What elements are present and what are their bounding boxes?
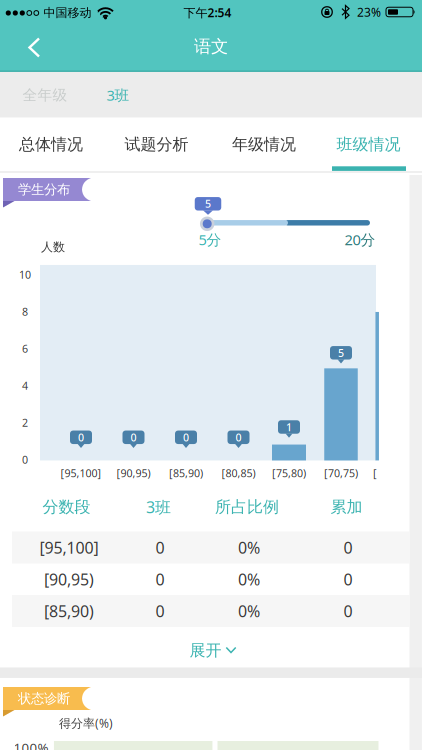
staticText: 累加: [330, 497, 362, 517]
staticText: 中国移动: [43, 5, 91, 20]
staticText: 所占比例: [215, 497, 279, 517]
staticText: 10: [19, 267, 31, 282]
staticText: 6: [22, 341, 28, 356]
button[interactable]: 总体情况: [3, 117, 99, 171]
staticText: [85,90): [169, 466, 203, 480]
staticText: [75,80): [272, 466, 306, 480]
staticText: 23%: [357, 4, 381, 20]
staticText: 3班: [106, 85, 129, 105]
staticText: 4: [22, 378, 28, 393]
staticText: 8: [22, 304, 28, 319]
staticText: 0: [155, 537, 164, 558]
button[interactable]: [12, 25, 56, 69]
button[interactable]: [90,95): [0, 563, 422, 595]
staticText: 5分: [198, 230, 221, 249]
staticText: 0: [183, 430, 189, 444]
staticText: [70,75): [324, 466, 358, 480]
button[interactable]: 全年级: [13, 72, 77, 117]
staticText: 3班: [146, 496, 171, 518]
staticText: 1: [286, 420, 292, 434]
staticText: 0: [343, 537, 352, 558]
staticText: 0: [78, 430, 84, 444]
staticText: 下午2:54: [183, 4, 231, 20]
staticText: 班级情况: [336, 135, 400, 154]
staticText: 0: [155, 600, 164, 622]
staticText: 试题分析: [124, 135, 188, 154]
staticText: 0: [235, 430, 241, 444]
staticText: 总体情况: [19, 135, 83, 154]
button[interactable]: [95,100]: [0, 531, 422, 563]
button[interactable]: 班级情况: [320, 117, 416, 171]
staticText: 0: [343, 600, 352, 622]
staticText: 5: [338, 346, 344, 360]
staticText: 年级情况: [232, 135, 296, 154]
staticText: 5: [205, 196, 211, 211]
staticText: 2: [22, 415, 28, 430]
staticText: 得分率(%): [59, 715, 113, 731]
button[interactable]: 年级情况: [216, 117, 312, 171]
staticText: 分数段: [42, 497, 90, 517]
staticText: [90,95): [116, 466, 150, 480]
staticText: 0: [22, 452, 28, 467]
staticText: [95,100]: [39, 537, 98, 558]
staticText: [95,100]: [60, 466, 101, 480]
staticText: [80,85): [221, 466, 255, 480]
button[interactable]: 试题分析: [108, 117, 204, 171]
staticText: 0%: [238, 537, 260, 558]
staticText: 人数: [41, 240, 65, 254]
staticText: 学生分布: [18, 181, 70, 198]
staticText: 100%: [13, 739, 48, 750]
staticText: 展开: [189, 641, 221, 660]
staticText: 全年级: [22, 86, 67, 104]
button[interactable]: 3班: [93, 72, 143, 117]
staticText: 语文: [194, 36, 228, 57]
staticText: 0%: [238, 600, 260, 622]
staticText: 0: [343, 569, 352, 590]
staticText: 20分: [344, 230, 375, 249]
staticText: [85,90): [44, 600, 94, 622]
staticText: 0: [155, 569, 164, 590]
staticText: 0: [130, 430, 136, 444]
button[interactable]: 展开: [168, 635, 258, 665]
staticText: [: [373, 466, 377, 480]
staticText: 0%: [238, 569, 260, 590]
button[interactable]: [85,90): [0, 595, 422, 627]
staticText: 状态诊断: [18, 690, 70, 707]
staticText: [90,95): [44, 569, 94, 590]
